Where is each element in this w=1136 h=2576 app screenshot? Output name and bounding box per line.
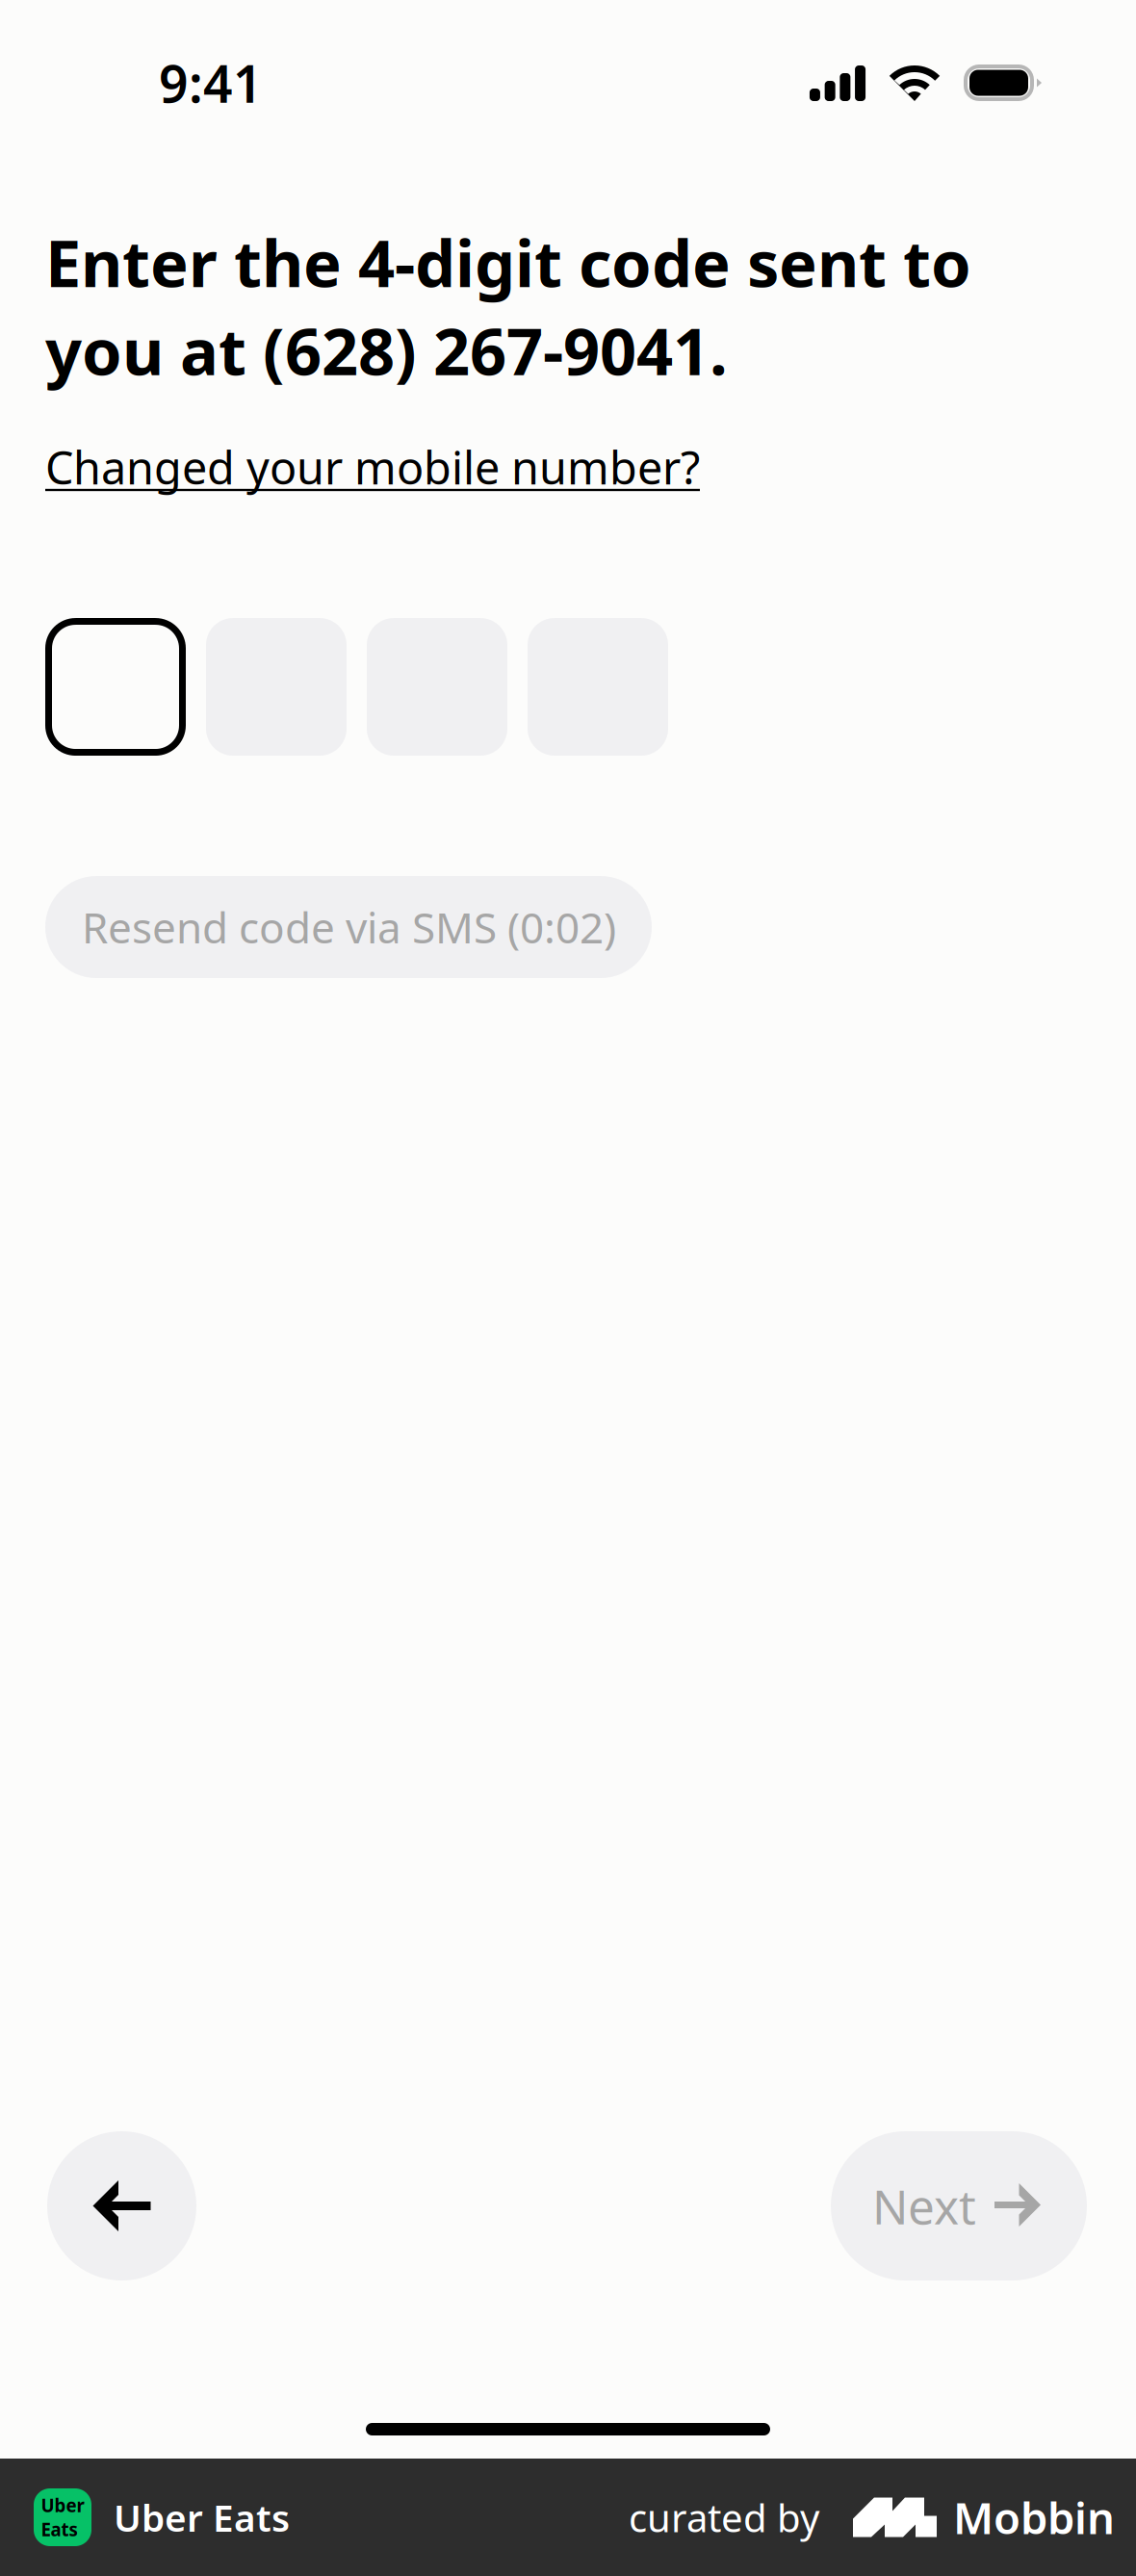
staticText: 9:41	[159, 49, 263, 117]
staticText: Enter the 4-digit code sent to you at (6…	[45, 219, 971, 393]
button[interactable]: Next	[831, 2131, 1087, 2280]
button[interactable]: Resend code via SMS (0:02)	[45, 876, 652, 978]
staticText: Uber	[41, 2493, 84, 2517]
button[interactable]: Changed your mobile number?	[45, 437, 700, 497]
staticText: Resend code via SMS (0:02)	[82, 899, 616, 955]
staticText: Next	[872, 2174, 976, 2237]
button[interactable]: Back	[47, 2131, 196, 2280]
button[interactable]: 4-digit code	[45, 618, 668, 756]
staticText: Mobbin	[953, 2488, 1115, 2546]
staticText: Eats	[41, 2517, 77, 2541]
staticText: Uber Eats	[114, 2493, 290, 2542]
staticText: Changed your mobile number?	[45, 437, 700, 497]
staticText: curated by	[629, 2492, 819, 2543]
